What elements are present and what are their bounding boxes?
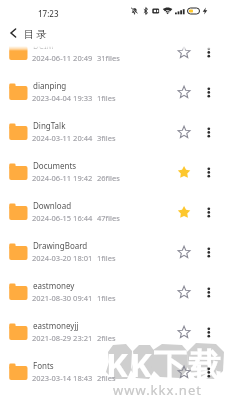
staticText: eastmoney bbox=[33, 280, 75, 291]
button[interactable]: More options bbox=[199, 204, 216, 221]
staticText: KK下载 bbox=[106, 342, 224, 387]
button[interactable]: More options bbox=[199, 164, 216, 181]
staticText: 2024-06-15 16:44 bbox=[32, 213, 93, 223]
staticText: 17:23 bbox=[38, 8, 59, 19]
staticText: 1files bbox=[97, 93, 116, 103]
button[interactable]: Favorite bbox=[176, 204, 193, 221]
staticText: 2024-06-11 19:42 bbox=[32, 173, 93, 183]
staticText: www.kkx.net bbox=[113, 381, 202, 399]
button[interactable]: Favorite bbox=[176, 124, 193, 141]
staticText: 1files bbox=[97, 253, 116, 263]
button[interactable]: DrawingBoard bbox=[0, 232, 225, 272]
button[interactable]: Favorite bbox=[176, 284, 193, 301]
button[interactable]: More options bbox=[199, 324, 216, 341]
button[interactable]: More options bbox=[199, 244, 216, 261]
staticText: dianping bbox=[33, 80, 67, 91]
button[interactable]: More options bbox=[199, 124, 216, 141]
button[interactable]: More options bbox=[199, 84, 216, 101]
button[interactable]: DingTalk bbox=[0, 112, 225, 152]
button[interactable]: Favorite bbox=[176, 324, 193, 341]
staticText: DrawingBoard bbox=[33, 240, 88, 251]
staticText: Fonts bbox=[33, 360, 54, 371]
button[interactable]: Fonts bbox=[0, 352, 225, 392]
staticText: 2023-04-04 19:33 bbox=[32, 93, 93, 103]
staticText: Download bbox=[33, 200, 72, 211]
button[interactable]: Favorite bbox=[176, 244, 193, 261]
button[interactable]: eastmoney bbox=[0, 272, 225, 312]
button[interactable]: Download bbox=[0, 192, 225, 232]
staticText: 2files bbox=[97, 373, 116, 383]
button[interactable]: Back bbox=[0, 20, 26, 46]
staticText: 31files bbox=[97, 53, 120, 63]
staticText: DingTalk bbox=[33, 120, 66, 131]
button[interactable]: Favorite bbox=[176, 44, 193, 61]
button[interactable]: dianping bbox=[0, 72, 225, 112]
staticText: Documents bbox=[33, 160, 77, 171]
button[interactable]: eastmoneyjj bbox=[0, 312, 225, 352]
button[interactable]: More options bbox=[199, 364, 216, 381]
button[interactable]: DCIM bbox=[0, 32, 225, 72]
staticText: 2024-03-20 18:01 bbox=[32, 253, 93, 263]
staticText: 1files bbox=[97, 293, 116, 303]
staticText: 3files bbox=[97, 133, 116, 143]
staticText: 2021-08-29 23:21 bbox=[32, 333, 93, 343]
staticText: DCIM bbox=[33, 40, 54, 51]
staticText: 47files bbox=[97, 213, 120, 223]
button[interactable]: Favorite bbox=[176, 164, 193, 181]
button[interactable]: Favorite bbox=[176, 364, 193, 381]
staticText: 26files bbox=[97, 173, 120, 183]
staticText: 目录 bbox=[24, 28, 49, 41]
staticText: 2024-06-11 20:49 bbox=[32, 53, 93, 63]
staticText: 2023-03-14 18:43 bbox=[32, 373, 93, 383]
staticText: 2021-08-30 09:41 bbox=[32, 293, 93, 303]
button[interactable]: Favorite bbox=[176, 84, 193, 101]
button[interactable]: More options bbox=[199, 284, 216, 301]
staticText: 2files bbox=[97, 333, 116, 343]
button[interactable]: Documents bbox=[0, 152, 225, 192]
staticText: eastmoneyjj bbox=[33, 320, 79, 331]
staticText: 2024-03-11 20:44 bbox=[32, 133, 93, 143]
button[interactable]: More options bbox=[199, 44, 216, 61]
